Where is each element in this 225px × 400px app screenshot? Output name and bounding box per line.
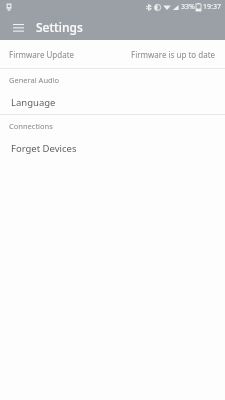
button[interactable]: Open navigation menu — [8, 17, 28, 37]
staticText: 19:37 — [203, 2, 221, 12]
button[interactable]: Forget Devices — [0, 136, 225, 160]
button[interactable]: Language — [0, 90, 225, 114]
staticText: Firmware is up to date — [131, 49, 216, 60]
staticText: Settings — [36, 19, 83, 35]
staticText: Firmware Update — [9, 49, 75, 60]
staticText: Connections — [9, 121, 53, 131]
staticText: Forget Devices — [11, 142, 77, 155]
button[interactable]: Firmware Update — [0, 40, 225, 68]
staticText: General Audio — [9, 75, 60, 85]
staticText: 33% — [181, 2, 195, 12]
staticText: Language — [11, 96, 56, 109]
